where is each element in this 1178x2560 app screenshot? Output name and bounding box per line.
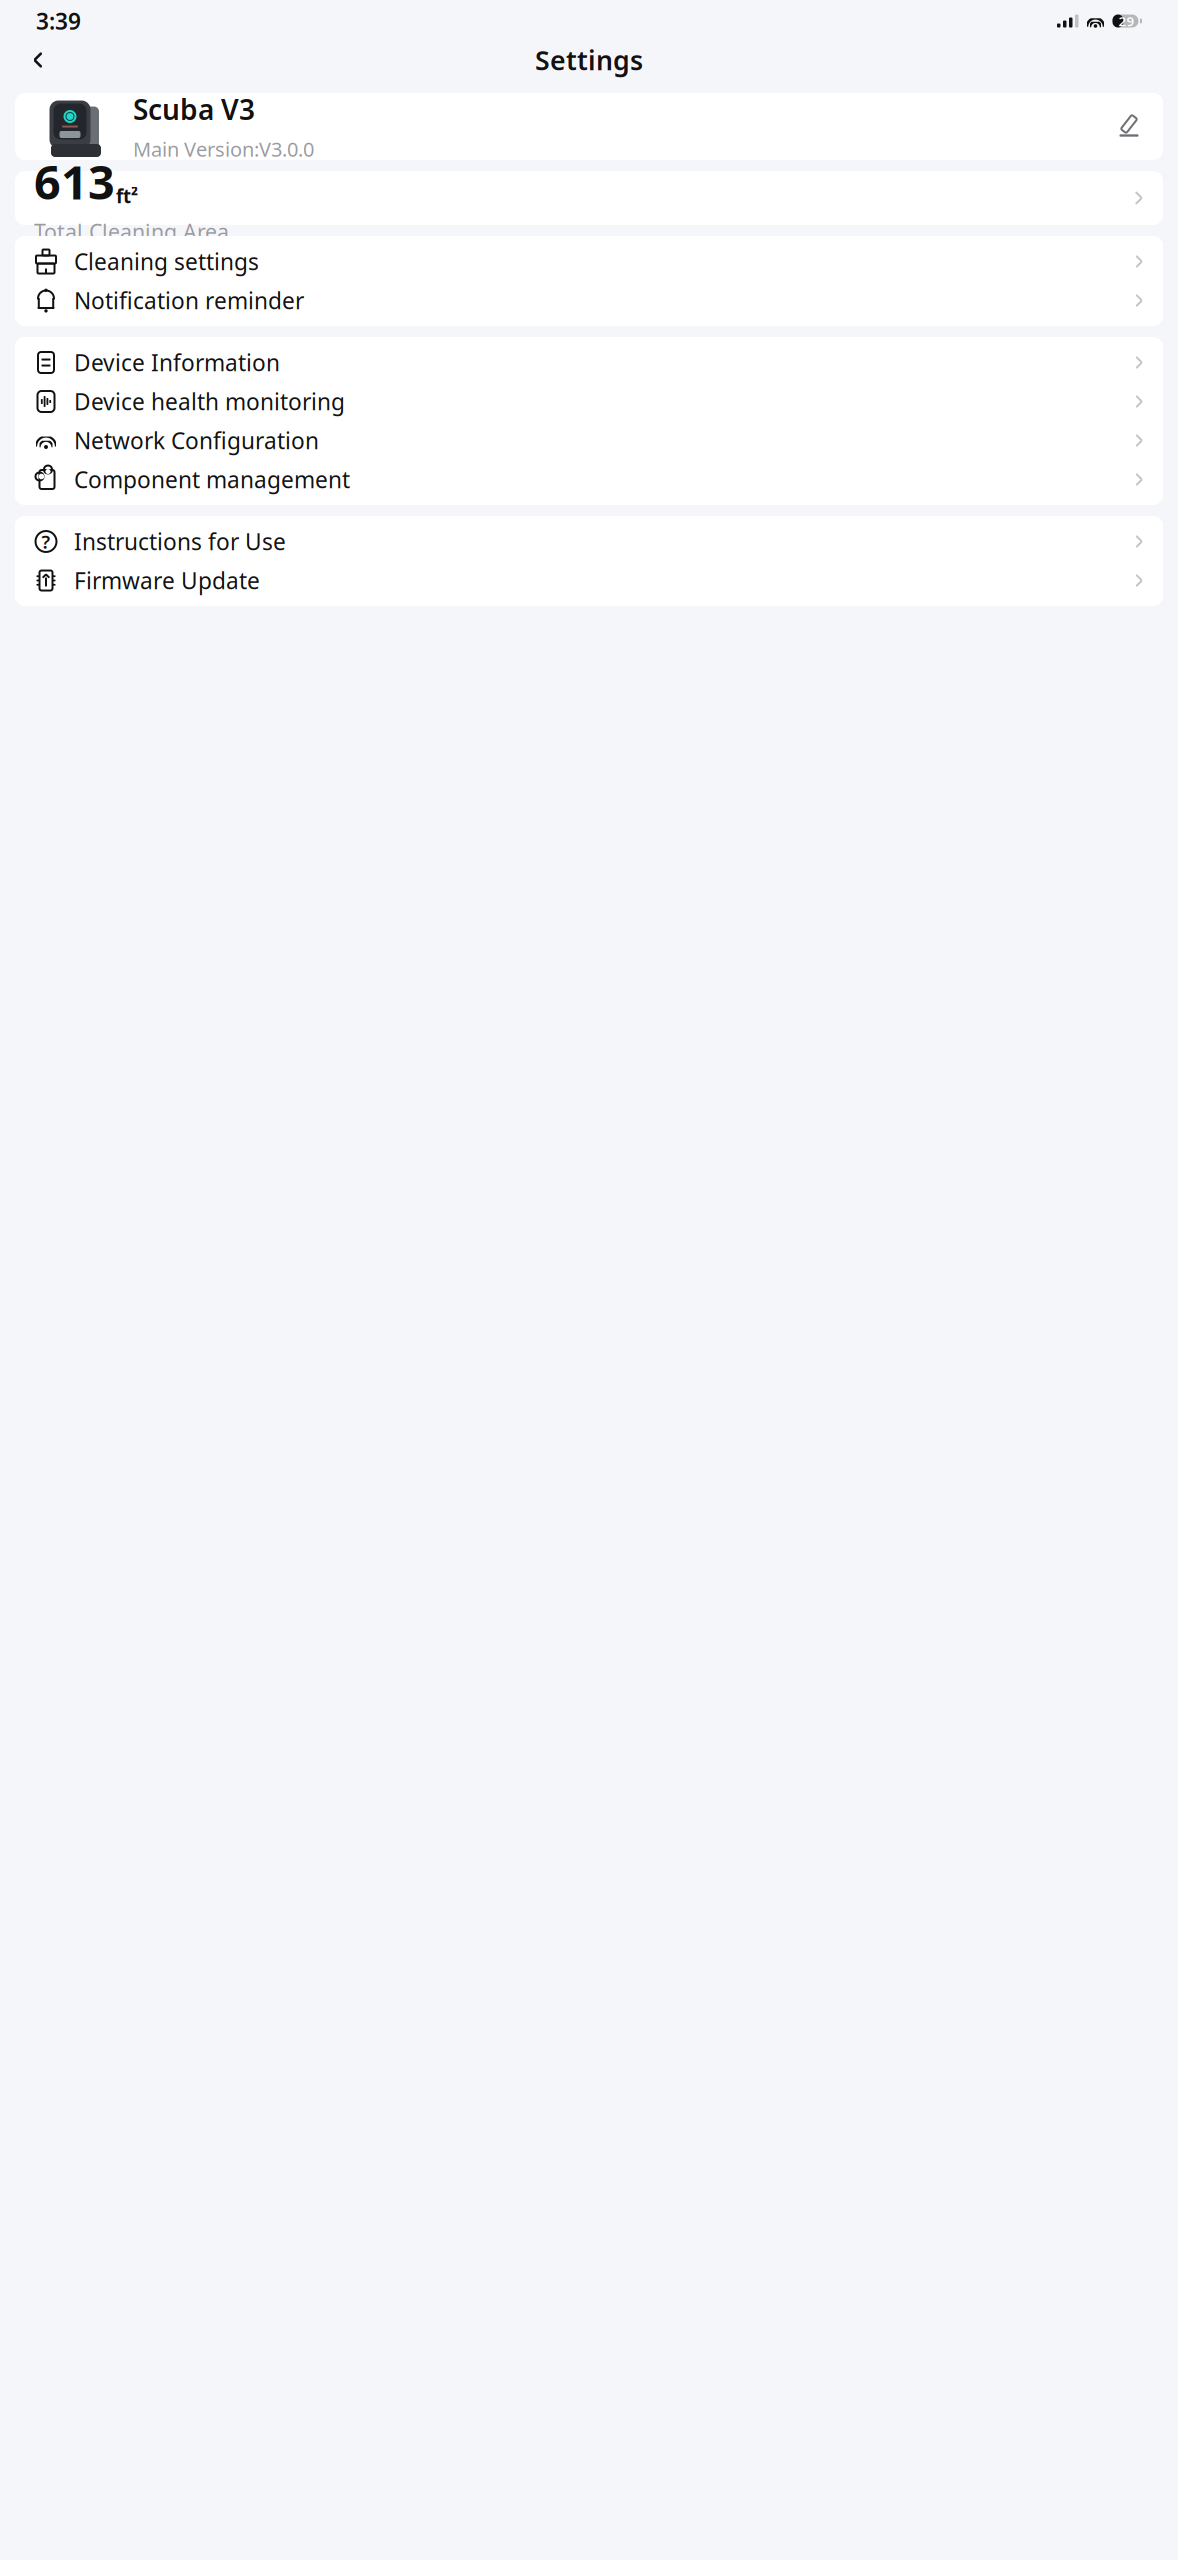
staticText: Network Configuration: [74, 425, 319, 455]
staticText: Device health monitoring: [74, 386, 345, 416]
staticText: Device Information: [74, 347, 280, 377]
button[interactable]: Network Configuration: [15, 421, 1163, 460]
staticText: Component management: [74, 464, 350, 494]
button[interactable]: Firmware Update: [15, 561, 1163, 600]
button[interactable]: Rename device: [1109, 106, 1149, 146]
staticText: Total Cleaning Area: [34, 217, 229, 246]
staticText: 29: [1118, 12, 1134, 30]
button[interactable]: ?: [15, 522, 1163, 561]
staticText: 613: [34, 150, 115, 212]
button[interactable]: Back: [16, 38, 60, 82]
staticText: Notification reminder: [74, 285, 304, 315]
button[interactable]: 613: [0, 171, 1178, 225]
button[interactable]: Notification reminder: [15, 281, 1163, 320]
staticText: Firmware Update: [74, 565, 260, 595]
button[interactable]: Cleaning settings: [15, 242, 1163, 281]
staticText: 3:39: [36, 6, 81, 36]
staticText: Scuba V3: [133, 91, 255, 128]
staticText: Settings: [535, 42, 643, 78]
staticText: Cleaning settings: [74, 246, 259, 276]
button[interactable]: Component management: [15, 460, 1163, 499]
button[interactable]: Device Information: [15, 343, 1163, 382]
staticText: ft²: [116, 183, 138, 208]
staticText: Instructions for Use: [74, 526, 286, 556]
staticText: Main Version:V3.0.0: [133, 136, 314, 162]
staticText: ?: [41, 529, 50, 554]
button[interactable]: Device health monitoring: [15, 382, 1163, 421]
